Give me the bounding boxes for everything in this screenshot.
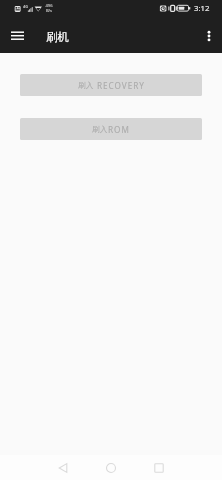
staticText: 刷入 (78, 81, 94, 91)
staticText: 496 B/s (45, 3, 53, 13)
staticText: 3:12 (194, 3, 210, 14)
button[interactable]: 刷入 (20, 74, 202, 96)
button[interactable]: 刷入 (20, 118, 202, 140)
button[interactable]: Home (98, 455, 123, 480)
staticText: 刷机 (46, 30, 69, 44)
button[interactable]: More options (194, 20, 222, 50)
button[interactable]: Back (50, 455, 75, 480)
staticText: RECOVERY (94, 80, 145, 91)
button[interactable]: Recent apps (146, 455, 171, 480)
staticText: 4G (23, 4, 29, 9)
button[interactable]: Open navigation menu (3, 21, 31, 49)
staticText: ROM (108, 124, 130, 135)
staticText: 刷入 (92, 125, 108, 135)
